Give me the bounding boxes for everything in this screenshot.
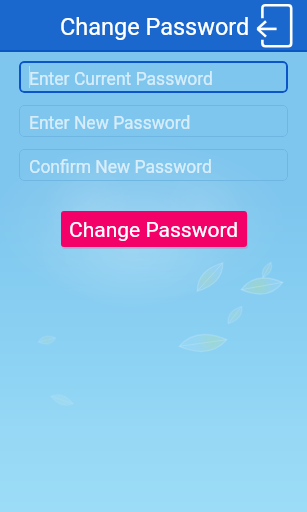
staticText: Change Password xyxy=(60,13,250,41)
button[interactable]: Enter Current Password xyxy=(19,61,288,93)
button[interactable]: Enter New Password xyxy=(19,105,288,137)
staticText: Change Password xyxy=(69,218,239,243)
button[interactable]: Confirm New Password xyxy=(19,149,288,181)
staticText: Confirm New Password xyxy=(29,157,212,178)
staticText: Enter Current Password xyxy=(29,69,213,90)
staticText: Enter New Password xyxy=(29,113,191,134)
button[interactable]: Logout xyxy=(252,0,304,52)
button[interactable]: Change Password xyxy=(61,211,247,247)
